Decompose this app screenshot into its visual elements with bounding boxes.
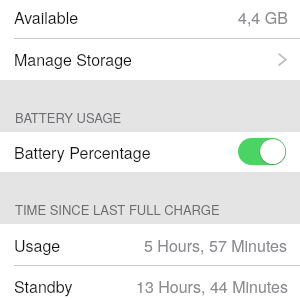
button[interactable]: Available (0, 0, 300, 38)
staticText: Available (14, 6, 79, 29)
button[interactable]: Usage (0, 224, 300, 266)
button[interactable]: Manage Storage (0, 38, 300, 80)
staticText: 13 Hours, 44 Minutes (136, 275, 288, 298)
staticText: Usage (14, 234, 61, 257)
button[interactable]: Battery Percentage (0, 132, 300, 172)
staticText: Manage Storage (14, 48, 132, 71)
staticText: 5 Hours, 57 Minutes (144, 234, 288, 257)
staticText: Battery Percentage (14, 141, 151, 164)
staticText: Standby (14, 275, 73, 298)
other: Open Manage Storage (278, 51, 288, 67)
staticText: BATTERY USAGE (15, 108, 122, 127)
staticText: 4,4 GB (238, 6, 288, 29)
button[interactable]: Battery Percentage toggle (238, 138, 286, 165)
staticText: TIME SINCE LAST FULL CHARGE (15, 200, 220, 219)
button[interactable]: Standby (0, 266, 300, 300)
